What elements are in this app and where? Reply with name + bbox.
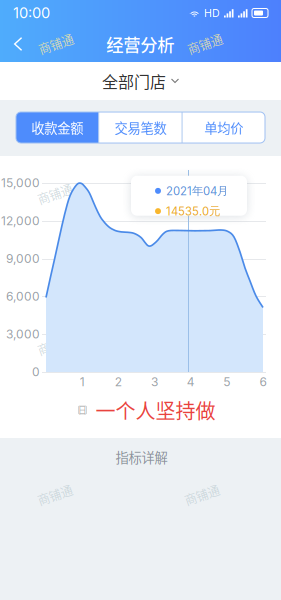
staticText: 14535.0元 xyxy=(166,204,220,218)
staticText: 商铺通 xyxy=(184,336,220,354)
staticText: 经营分析 xyxy=(106,31,174,57)
staticText: 0 xyxy=(32,365,40,379)
staticText: HD xyxy=(204,6,220,19)
button[interactable]: 单均价 xyxy=(183,112,265,143)
staticText: 一个人坚持做 xyxy=(95,395,215,424)
staticText: 商铺通 xyxy=(37,185,73,203)
staticText: 商铺通 xyxy=(187,35,223,53)
staticText: 3,000 xyxy=(6,327,40,341)
staticText: 4 xyxy=(187,375,195,389)
staticText: 15,000 xyxy=(1,176,40,190)
staticText: 12,000 xyxy=(1,213,40,228)
button[interactable]: 全部门店 xyxy=(0,62,281,100)
staticText: 2 xyxy=(115,375,122,389)
staticText: 3 xyxy=(151,375,158,389)
staticText: 指标详解 xyxy=(115,447,167,467)
staticText: 6,000 xyxy=(6,289,40,304)
staticText: 商铺通 xyxy=(184,185,220,203)
staticText: 6 xyxy=(259,375,266,389)
staticText: 1 xyxy=(80,375,85,389)
staticText: 2021年04月 xyxy=(166,184,228,198)
staticText: 单均价 xyxy=(204,118,243,137)
staticText: 日 xyxy=(78,404,87,416)
staticText: 9,000 xyxy=(6,251,40,266)
staticText: 10:00 xyxy=(13,4,50,22)
staticText: 商铺通 xyxy=(184,486,220,504)
staticText: 收款金额 xyxy=(31,118,83,137)
button[interactable]: Back xyxy=(0,26,34,62)
staticText: 全部门店 xyxy=(102,69,166,93)
button[interactable]: 收款金额 xyxy=(16,112,98,143)
button[interactable]: 交易笔数 xyxy=(99,112,182,143)
staticText: 商铺通 xyxy=(38,35,74,53)
staticText: 商铺通 xyxy=(37,336,73,354)
staticText: 5 xyxy=(223,375,230,389)
staticText: 商铺通 xyxy=(37,486,73,504)
staticText: 交易笔数 xyxy=(114,118,166,137)
